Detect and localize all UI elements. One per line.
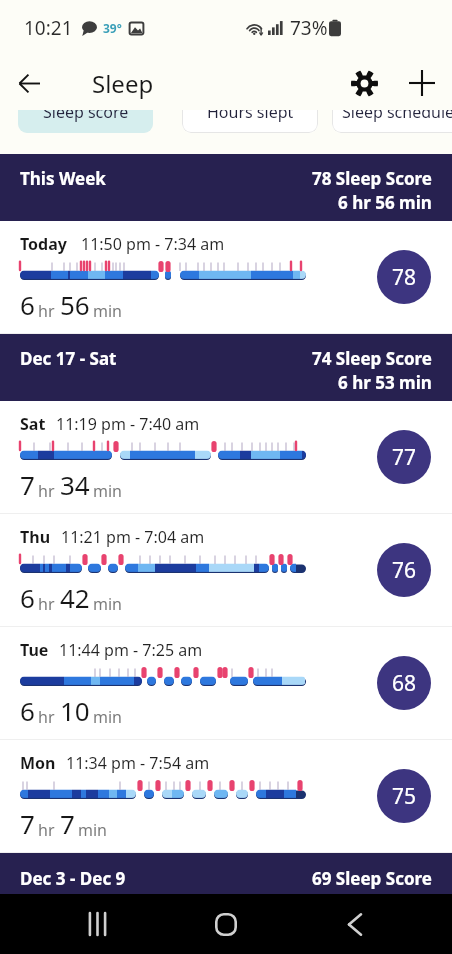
- button[interactable]: Settings: [336, 56, 392, 110]
- button[interactable]: Today: [0, 221, 452, 334]
- button[interactable]: 78: [377, 250, 431, 304]
- staticText: Tue: [20, 639, 49, 661]
- staticText: 42: [60, 580, 90, 615]
- staticText: hr: [38, 300, 55, 322]
- button[interactable]: Sat: [0, 401, 452, 514]
- button[interactable]: 75: [377, 769, 431, 823]
- staticText: 10:21: [24, 15, 73, 41]
- staticText: min: [93, 706, 122, 728]
- button[interactable]: Hours slept: [182, 110, 318, 133]
- staticText: 10: [60, 693, 90, 728]
- staticText: min: [78, 819, 107, 841]
- staticText: hr: [38, 819, 55, 841]
- staticText: min: [93, 300, 122, 322]
- staticText: 73%: [290, 15, 328, 41]
- button[interactable]: 76: [377, 543, 431, 597]
- staticText: Sat: [20, 413, 46, 435]
- staticText: hr: [38, 480, 55, 502]
- staticText: 78 Sleep Score: [312, 167, 432, 190]
- staticText: Sleep score: [43, 110, 129, 123]
- button[interactable]: 68: [377, 656, 431, 710]
- staticText: 74 Sleep Score: [312, 347, 432, 370]
- button[interactable]: Back: [0, 56, 58, 110]
- staticText: 6 hr 56 min: [338, 191, 432, 214]
- staticText: 75: [392, 782, 417, 811]
- staticText: 6: [20, 580, 35, 615]
- staticText: 69 Sleep Score: [312, 867, 432, 890]
- button[interactable]: Add: [392, 56, 452, 110]
- staticText: 11:34 pm - 7:54 am: [66, 752, 210, 774]
- button[interactable]: Sleep score: [18, 110, 153, 133]
- button[interactable]: 77: [377, 430, 431, 484]
- staticText: Hours slept: [207, 110, 294, 123]
- staticText: Sleep schedule: [342, 110, 452, 123]
- staticText: 68: [392, 669, 417, 698]
- staticText: 11:50 pm - 7:34 am: [81, 233, 225, 255]
- staticText: 11:21 pm - 7:04 am: [61, 526, 205, 548]
- staticText: Dec 3 - Dec 9: [20, 867, 126, 890]
- staticText: Sleep: [92, 67, 154, 100]
- staticText: 11:19 pm - 7:40 am: [56, 413, 200, 435]
- button[interactable]: Back: [323, 894, 387, 954]
- button[interactable]: Recent apps: [65, 894, 129, 954]
- button[interactable]: Home: [194, 894, 258, 954]
- staticText: hr: [38, 593, 55, 615]
- staticText: 6: [20, 693, 35, 728]
- staticText: 7: [20, 467, 35, 502]
- staticText: 39°: [103, 20, 122, 36]
- staticText: 77: [392, 443, 417, 472]
- staticText: Mon: [20, 752, 56, 774]
- button[interactable]: Thu: [0, 514, 452, 627]
- button[interactable]: Sleep schedule: [332, 110, 452, 133]
- staticText: hr: [38, 706, 55, 728]
- staticText: min: [93, 480, 122, 502]
- staticText: 7: [20, 806, 35, 841]
- staticText: 7: [60, 806, 75, 841]
- staticText: 6: [20, 287, 35, 322]
- staticText: Thu: [20, 526, 51, 548]
- staticText: 78: [392, 263, 417, 292]
- staticText: 76: [392, 556, 417, 585]
- staticText: 6 hr 53 min: [338, 371, 432, 394]
- staticText: This Week: [20, 167, 106, 190]
- staticText: Dec 17 - Sat: [20, 347, 117, 370]
- staticText: 34: [60, 467, 90, 502]
- staticText: 56: [60, 287, 90, 322]
- staticText: 11:44 pm - 7:25 am: [59, 639, 203, 661]
- button[interactable]: Mon: [0, 740, 452, 853]
- staticText: min: [93, 593, 122, 615]
- button[interactable]: Tue: [0, 627, 452, 740]
- staticText: Today: [20, 233, 67, 255]
